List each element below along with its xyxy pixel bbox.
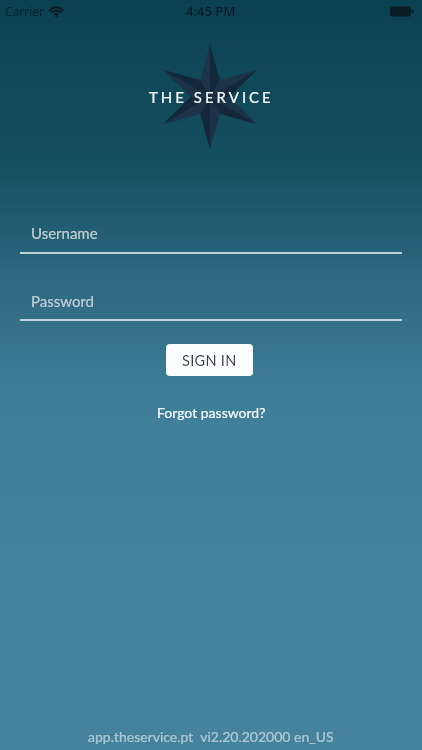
staticText: SIGN IN bbox=[182, 352, 237, 369]
staticText: app.theservice.pt vi2.20.202000 en_US bbox=[88, 728, 334, 745]
staticText: Carrier bbox=[5, 3, 45, 19]
button[interactable]: Username bbox=[20, 215, 402, 251]
staticText: Password bbox=[31, 292, 94, 310]
staticText: 4:45 PM bbox=[186, 2, 236, 20]
button[interactable]: Forgot password? bbox=[157, 404, 266, 421]
staticText: Username bbox=[31, 224, 98, 242]
staticText: THE SERVICE bbox=[149, 88, 274, 106]
button[interactable]: Password bbox=[20, 283, 402, 319]
button[interactable]: SIGN IN bbox=[166, 344, 253, 376]
